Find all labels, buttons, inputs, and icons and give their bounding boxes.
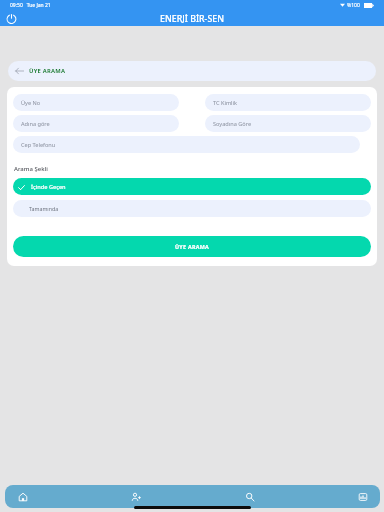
staticText: Arama Şekli [14,165,48,173]
button[interactable]: Raporlar [353,485,372,508]
button[interactable]: Ara [240,485,259,508]
staticText: ÜYE ARAMA [175,243,209,250]
button[interactable]: ÜYE ARAMA [8,61,376,81]
button[interactable]: İçinde Geçen [13,178,371,195]
button[interactable]: Tamamında [13,200,371,217]
staticText: İçinde Geçen [31,183,66,191]
staticText: Soyadına Göre [213,120,252,128]
button[interactable]: Ana Sayfa [13,485,32,508]
button[interactable]: Çıkış [3,10,19,26]
button[interactable]: Soyadına Göre [205,115,371,132]
button[interactable]: Üye No [13,94,179,111]
staticText: Cep Telefonu [21,141,56,149]
staticText: ENERJİ BİR-SEN [160,13,224,25]
staticText: ÜYE ARAMA [29,67,66,75]
staticText: TC Kimlik [213,99,237,107]
staticText: Üye No [21,99,41,107]
staticText: 09:50 Tue Jan 21 [10,2,51,9]
button[interactable]: TC Kimlik [205,94,371,111]
staticText: Tamamında [29,205,59,212]
button[interactable]: Adına göre [13,115,179,132]
staticText: Adına göre [21,120,50,128]
staticText: %100 [347,2,360,9]
button[interactable]: Üye Ekle [126,485,145,508]
button[interactable]: Cep Telefonu [13,136,360,153]
button[interactable]: ÜYE ARAMA [13,236,371,257]
